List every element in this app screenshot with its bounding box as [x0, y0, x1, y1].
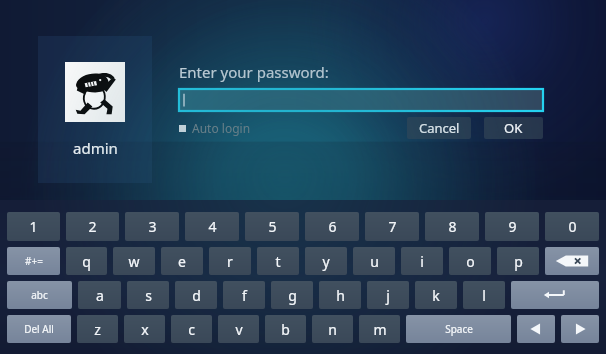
staticText: p [514, 252, 523, 271]
staticText: l [482, 286, 486, 305]
staticText: c [188, 320, 195, 339]
button[interactable]: l [463, 281, 505, 309]
staticText: abc [31, 288, 48, 302]
button[interactable]: q [66, 247, 107, 275]
button[interactable]: y [305, 247, 347, 275]
button[interactable]: Auto login [179, 120, 251, 136]
button[interactable]: r [209, 247, 251, 275]
button[interactable]: d [175, 281, 217, 309]
button[interactable]: k [415, 281, 457, 309]
button[interactable]: s [127, 281, 169, 309]
button[interactable]: Del All [7, 315, 71, 343]
staticText: m [373, 320, 387, 339]
button[interactable]: 3 [125, 212, 179, 241]
staticText: Auto login [192, 120, 251, 136]
staticText: 4 [208, 217, 217, 236]
button[interactable]: v [218, 315, 259, 343]
button[interactable]: a [78, 281, 121, 309]
staticText: 5 [268, 217, 277, 236]
staticText: #+= [25, 254, 43, 268]
button[interactable]: c [171, 315, 212, 343]
staticText: z [94, 320, 101, 339]
staticText: s [145, 286, 152, 305]
staticText: admin [73, 138, 118, 158]
staticText: 0 [568, 217, 577, 236]
button[interactable]: u [353, 247, 395, 275]
staticText: 2 [88, 217, 97, 236]
button[interactable]: n [312, 315, 353, 343]
button[interactable]: Backspace [545, 247, 599, 275]
staticText: 1 [29, 217, 38, 236]
button[interactable]: Move cursor right [561, 315, 599, 343]
button[interactable]: h [319, 281, 361, 309]
button[interactable]: w [113, 247, 155, 275]
button[interactable]: 9 [485, 212, 539, 241]
staticText: h [336, 286, 345, 305]
button[interactable]: OK [484, 117, 543, 139]
button[interactable]: Enter [511, 281, 599, 309]
staticText: Enter your password: [179, 62, 329, 82]
staticText: g [288, 286, 297, 305]
staticText: i [420, 252, 424, 271]
staticText: d [192, 286, 201, 305]
staticText: 7 [388, 217, 397, 236]
staticText: x [141, 320, 149, 339]
staticText: 6 [328, 217, 337, 236]
staticText: n [328, 320, 337, 339]
staticText: j [386, 286, 390, 305]
button[interactable]: Space [406, 315, 511, 343]
button[interactable]: 5 [245, 212, 299, 241]
staticText: b [281, 320, 290, 339]
button[interactable]: e [161, 247, 203, 275]
staticText: e [178, 252, 186, 271]
staticText: u [370, 252, 379, 271]
staticText: q [82, 252, 91, 271]
button[interactable]: z [77, 315, 118, 343]
button[interactable]: o [449, 247, 491, 275]
staticText: y [322, 252, 330, 271]
button[interactable]: i [401, 247, 443, 275]
button[interactable]: admin [38, 36, 152, 183]
button[interactable]: 0 [545, 212, 599, 241]
staticText: Cancel [419, 119, 460, 137]
staticText: f [242, 286, 247, 305]
staticText: v [235, 320, 243, 339]
staticText: k [432, 286, 440, 305]
button[interactable]: g [271, 281, 313, 309]
staticText: Del All [24, 322, 54, 336]
staticText: a [96, 286, 104, 305]
button[interactable]: 8 [425, 212, 479, 241]
button[interactable]: Cancel [407, 117, 471, 139]
button[interactable]: 2 [66, 212, 119, 241]
button[interactable]: 6 [305, 212, 359, 241]
button[interactable]: 7 [365, 212, 419, 241]
staticText: OK [504, 119, 523, 137]
button[interactable] [179, 89, 543, 111]
staticText: 9 [508, 217, 517, 236]
button[interactable]: 4 [185, 212, 239, 241]
button[interactable]: j [367, 281, 409, 309]
staticText: 3 [148, 217, 157, 236]
button[interactable]: b [265, 315, 306, 343]
button[interactable]: Move cursor left [517, 315, 555, 343]
button[interactable]: #+= [7, 247, 60, 275]
staticText: w [128, 252, 140, 271]
staticText: t [275, 252, 281, 271]
button[interactable]: 1 [7, 212, 60, 241]
button[interactable]: t [257, 247, 299, 275]
button[interactable]: f [223, 281, 265, 309]
staticText: 8 [448, 217, 457, 236]
button[interactable]: x [124, 315, 165, 343]
button[interactable]: m [359, 315, 400, 343]
staticText: r [227, 252, 233, 271]
button[interactable]: p [497, 247, 539, 275]
staticText: o [466, 252, 475, 271]
staticText: Space [445, 322, 473, 336]
button[interactable]: abc [7, 281, 72, 309]
